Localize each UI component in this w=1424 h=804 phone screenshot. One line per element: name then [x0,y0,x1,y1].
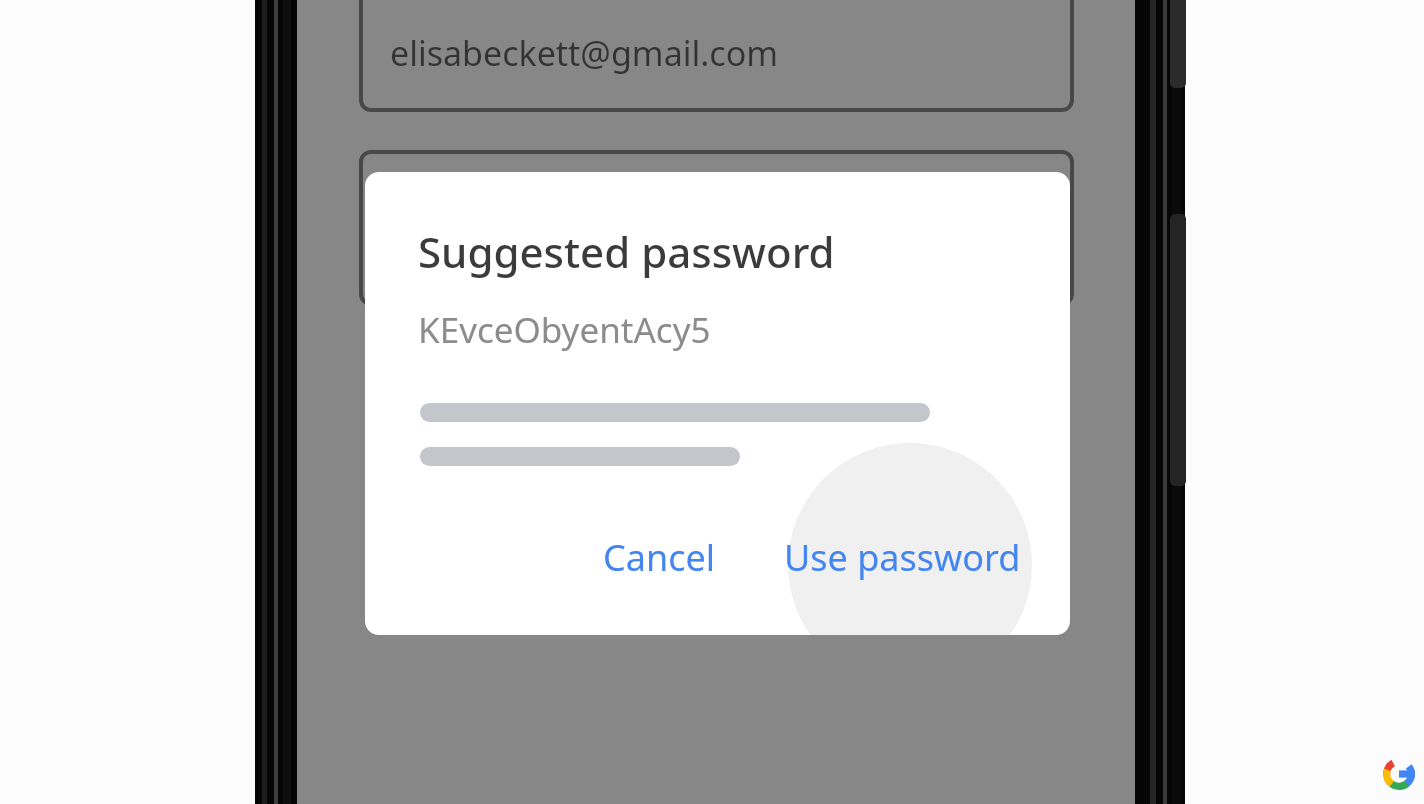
staticText: elisabeckett@gmail.com [390,30,779,76]
staticText: KEvceObyentAcy5 [418,306,711,354]
other: Google [1383,758,1415,790]
button[interactable]: Use password [780,527,1025,587]
staticText: Cancel [603,533,716,582]
button[interactable]: Cancel [595,527,723,587]
staticText: Suggested password [418,223,835,280]
staticText: Use password [784,533,1021,582]
